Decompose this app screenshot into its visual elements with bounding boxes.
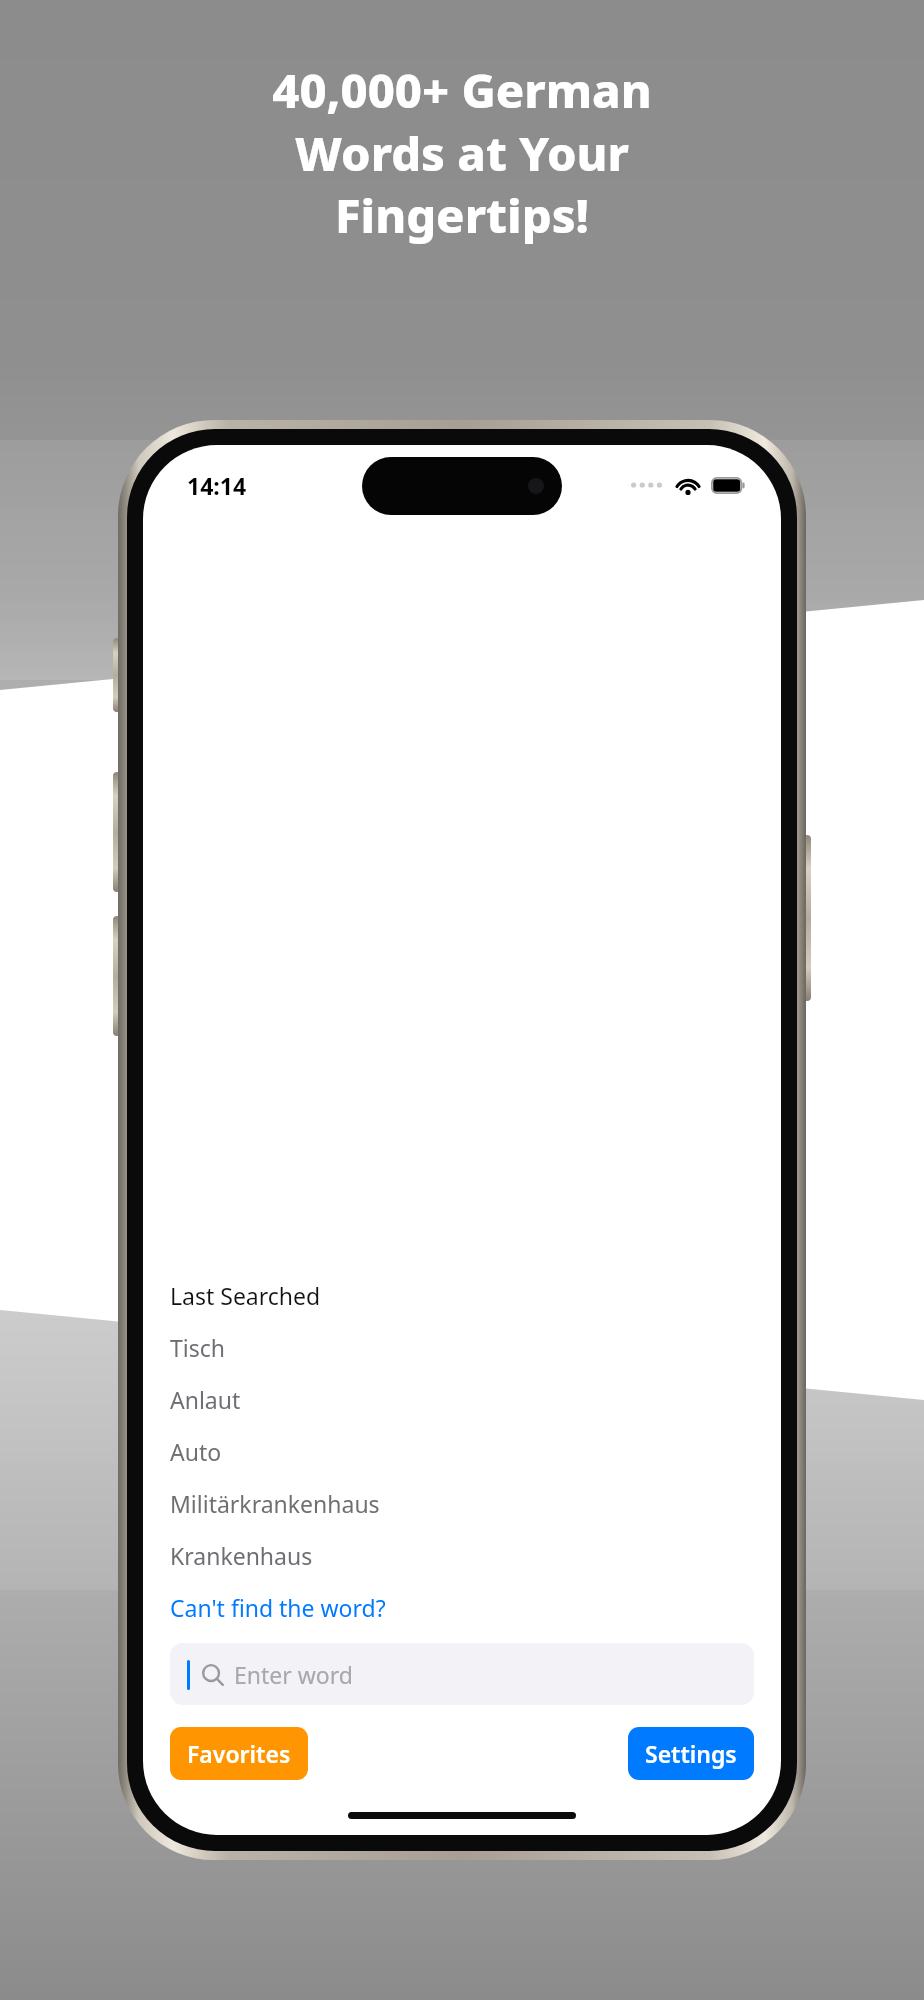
staticText: Can't find the word? xyxy=(170,1592,386,1623)
staticText: Tisch xyxy=(170,1332,225,1363)
staticText: Anlaut xyxy=(170,1384,241,1415)
other: Action button xyxy=(113,638,121,712)
other: Volume down xyxy=(113,916,121,1036)
button[interactable]: Auto xyxy=(170,1436,754,1467)
staticText: Auto xyxy=(170,1436,222,1467)
staticText: Last Searched xyxy=(170,1280,321,1311)
staticText: Militärkrankenhaus xyxy=(170,1488,380,1519)
button[interactable]: Enter word xyxy=(170,1643,754,1705)
button[interactable]: Militärkrankenhaus xyxy=(170,1488,754,1519)
staticText: Settings xyxy=(645,1738,737,1769)
button[interactable]: Last Searched xyxy=(170,1280,754,1311)
staticText: 14:14 xyxy=(187,470,247,501)
button[interactable]: Tisch xyxy=(170,1332,754,1363)
button[interactable]: Favorites xyxy=(170,1727,308,1780)
staticText: Favorites xyxy=(187,1738,291,1769)
button[interactable]: Krankenhaus xyxy=(170,1540,754,1571)
staticText: Enter word xyxy=(234,1659,353,1690)
button[interactable]: Settings xyxy=(628,1727,754,1780)
button[interactable]: Anlaut xyxy=(170,1384,754,1415)
other: Volume up xyxy=(113,772,121,892)
staticText: Krankenhaus xyxy=(170,1540,313,1571)
button[interactable]: Can't find the word? xyxy=(170,1592,754,1623)
other: Power xyxy=(803,835,811,1001)
staticText: 40,000+ German Words at Your Fingertips! xyxy=(272,58,652,246)
